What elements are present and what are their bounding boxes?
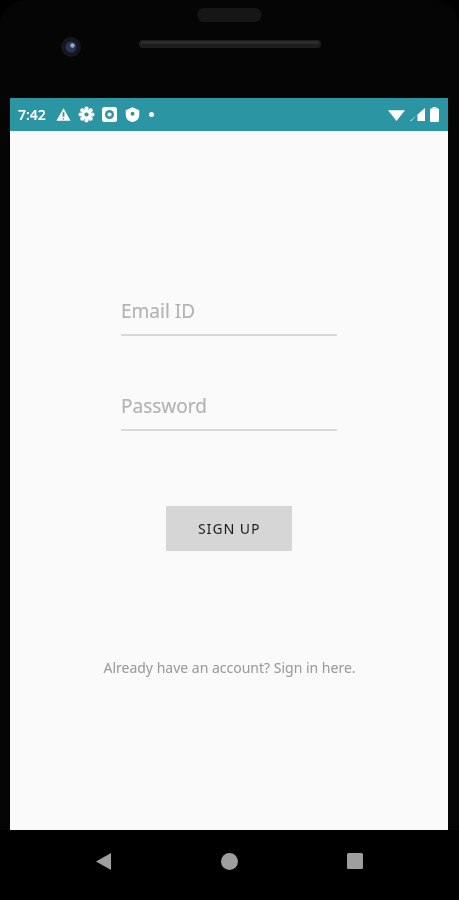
button[interactable]: Home <box>209 841 249 881</box>
staticText: SIGN UP <box>198 519 261 538</box>
staticText: Email ID <box>121 298 196 324</box>
button[interactable]: Already have an account? Sign in here. <box>10 658 448 677</box>
button[interactable]: Email ID <box>121 298 337 336</box>
button[interactable]: Back <box>83 841 123 881</box>
button[interactable]: Recent apps <box>335 841 375 881</box>
staticText: Password <box>121 393 207 419</box>
button[interactable]: Password <box>121 393 337 431</box>
staticText: Already have an account? Sign in here. <box>103 658 356 677</box>
staticText: 7:42 <box>18 105 46 124</box>
button[interactable]: SIGN UP <box>166 506 292 551</box>
